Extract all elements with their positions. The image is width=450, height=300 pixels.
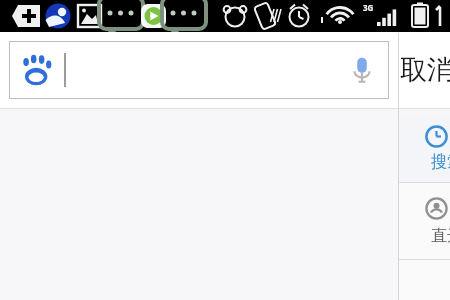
staticText: 直达 bbox=[431, 226, 450, 246]
button[interactable]: 直达 bbox=[399, 183, 450, 259]
button[interactable]: Voice search bbox=[343, 51, 381, 89]
button[interactable]: 搜索 bbox=[399, 117, 450, 182]
staticText: 3G bbox=[363, 2, 374, 13]
button[interactable]: 取消 bbox=[400, 32, 450, 108]
button[interactable]: Voice search bbox=[9, 41, 389, 99]
staticText: 取消 bbox=[400, 53, 450, 87]
staticText: 搜索 bbox=[431, 152, 450, 172]
